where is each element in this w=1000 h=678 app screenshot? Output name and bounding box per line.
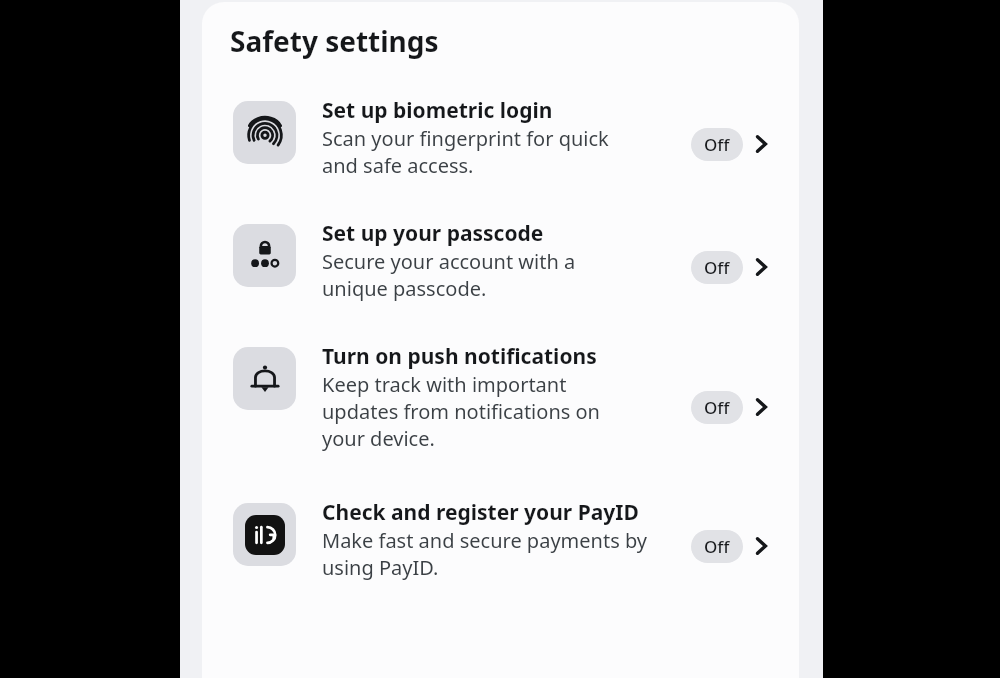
- button[interactable]: Off: [691, 251, 743, 284]
- staticText: your device.: [322, 425, 435, 452]
- staticText: Off: [704, 535, 730, 558]
- staticText: and safe access.: [322, 152, 474, 179]
- staticText: Check and register your PayID: [322, 498, 639, 527]
- button[interactable]: Off: [691, 391, 743, 424]
- button[interactable]: Open Check and register your PayID: [743, 528, 779, 564]
- staticText: Safety settings: [230, 22, 439, 60]
- staticText: Scan your fingerprint for quick: [322, 125, 609, 152]
- button[interactable]: Off: [691, 128, 743, 161]
- button[interactable]: Open Turn on push notifications: [743, 389, 779, 425]
- staticText: updates from notifications on: [322, 398, 600, 425]
- staticText: Off: [704, 256, 730, 279]
- staticText: Set up biometric login: [322, 96, 553, 125]
- staticText: Keep track with important: [322, 371, 567, 398]
- button[interactable]: Set up your passcode: [202, 219, 799, 315]
- staticText: unique passcode.: [322, 275, 487, 302]
- button[interactable]: Set up biometric login: [202, 96, 799, 192]
- button[interactable]: Turn on push notifications: [202, 342, 799, 471]
- button[interactable]: Open Set up biometric login: [743, 126, 779, 162]
- staticText: Off: [704, 396, 730, 419]
- button[interactable]: Check and register your PayID: [202, 498, 799, 594]
- staticText: Off: [704, 133, 730, 156]
- staticText: Turn on push notifications: [322, 342, 597, 371]
- staticText: Secure your account with a: [322, 248, 576, 275]
- staticText: Set up your passcode: [322, 219, 544, 248]
- staticText: using PayID.: [322, 554, 439, 581]
- button[interactable]: Open Set up your passcode: [743, 249, 779, 285]
- button[interactable]: Off: [691, 530, 743, 563]
- staticText: Make fast and secure payments by: [322, 527, 648, 554]
